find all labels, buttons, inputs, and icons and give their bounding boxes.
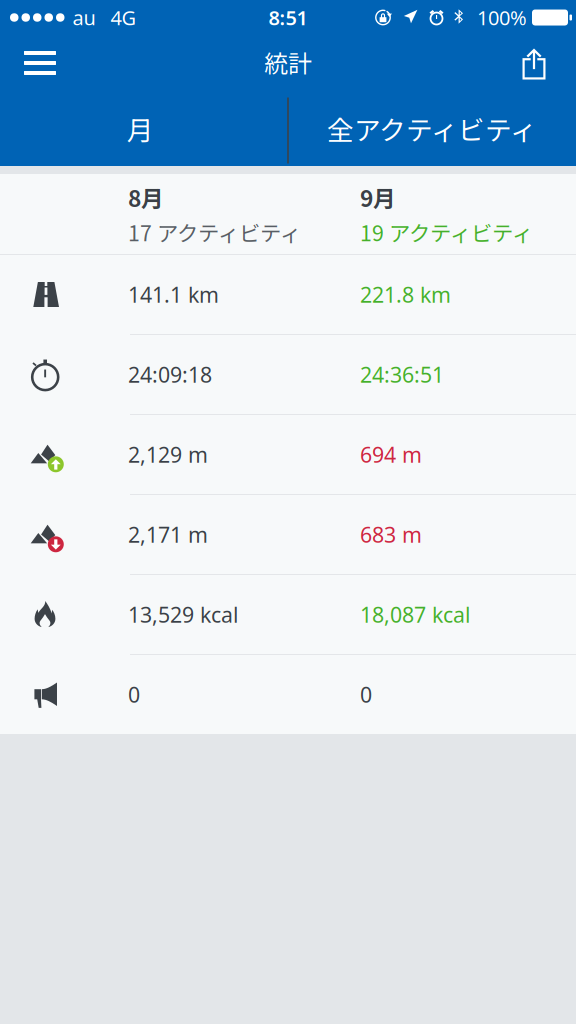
- staticText: 683 m: [360, 520, 422, 549]
- staticText: 24:36:51: [360, 360, 444, 389]
- button[interactable]: Menu: [9, 35, 71, 97]
- staticText: 4G: [110, 4, 136, 31]
- staticText: 100%: [477, 4, 527, 31]
- staticText: 0: [360, 680, 372, 709]
- staticText: 8月: [128, 181, 164, 213]
- button[interactable]: 13,529 kcal: [0, 575, 576, 654]
- staticText: au: [72, 4, 95, 31]
- staticText: 24:09:18: [128, 360, 212, 389]
- button[interactable]: 141.1 km: [0, 255, 576, 334]
- staticText: 221.8 km: [360, 280, 451, 309]
- staticText: 18,087 kcal: [360, 600, 471, 629]
- staticText: 17 アクティビティ: [128, 216, 301, 247]
- staticText: 13,529 kcal: [128, 600, 239, 629]
- staticText: 統計: [264, 45, 312, 79]
- button[interactable]: 24:09:18: [0, 335, 576, 414]
- staticText: 0: [128, 680, 140, 709]
- staticText: 9月: [360, 181, 396, 213]
- staticText: 2,129 m: [128, 440, 208, 469]
- staticText: 月: [126, 109, 153, 148]
- staticText: 全アクティビティ: [327, 109, 537, 148]
- button[interactable]: 0: [0, 655, 576, 734]
- staticText: 694 m: [360, 440, 422, 469]
- button[interactable]: 月: [0, 97, 288, 166]
- staticText: 141.1 km: [128, 280, 219, 309]
- button[interactable]: 全アクティビティ: [288, 97, 576, 166]
- staticText: 2,171 m: [128, 520, 208, 549]
- button[interactable]: Share: [503, 35, 565, 97]
- button[interactable]: 2,171 m: [0, 495, 576, 574]
- staticText: 19 アクティビティ: [360, 216, 533, 247]
- button[interactable]: 2,129 m: [0, 415, 576, 494]
- staticText: 8:51: [268, 4, 307, 31]
